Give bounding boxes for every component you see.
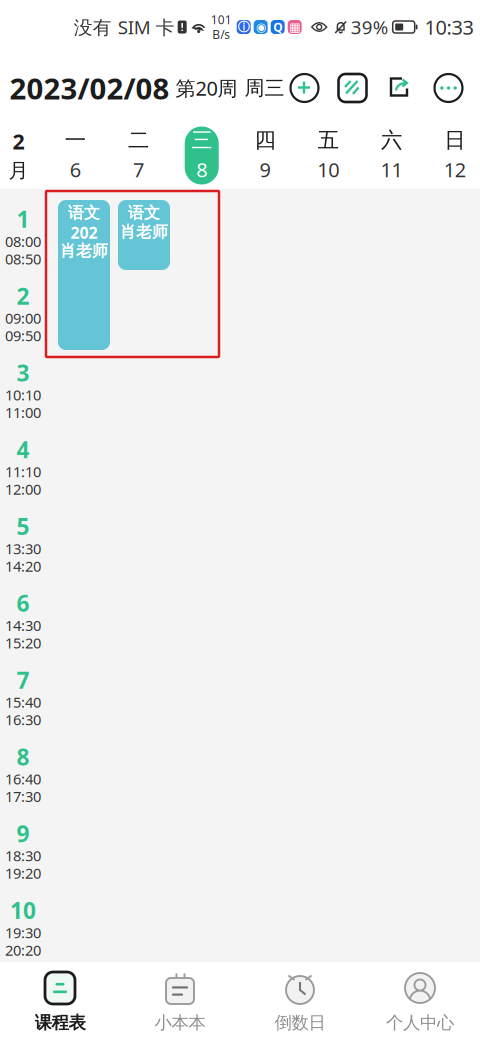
staticText: 六 <box>381 127 402 153</box>
staticText: 19:20 <box>5 863 41 883</box>
staticText: 11:10 <box>5 462 41 481</box>
button[interactable]: 六 <box>375 126 409 184</box>
staticText: 3 <box>16 358 29 388</box>
button[interactable]: 课程表 <box>0 962 120 1040</box>
staticText: 11:00 <box>5 403 41 422</box>
button[interactable]: 分享课表 <box>386 74 414 102</box>
staticText: 没有 SIM 卡 <box>74 15 175 39</box>
staticText: 月 <box>8 158 28 183</box>
staticText: 10:33 <box>424 14 473 40</box>
staticText: 肖老师 <box>60 241 108 261</box>
staticText: 14:30 <box>5 615 41 635</box>
staticText: ▦ <box>289 20 300 34</box>
staticText: 小本本 <box>154 1012 205 1033</box>
staticText: 5 <box>16 511 29 541</box>
button[interactable]: 日 <box>438 126 472 184</box>
staticText: 16:30 <box>5 710 41 729</box>
staticText: 周三 <box>244 76 284 100</box>
staticText: 09:00 <box>5 308 41 328</box>
staticText: 6 <box>16 588 29 618</box>
staticText: 2 <box>16 281 29 311</box>
staticText: 2023/02/08 <box>9 68 169 107</box>
button[interactable]: 三 <box>185 126 219 184</box>
staticText: 20:20 <box>5 940 41 960</box>
staticText: 16:40 <box>5 769 41 789</box>
staticText: 9 <box>259 156 270 183</box>
staticText: Q <box>273 19 282 35</box>
staticText: 2 <box>12 127 24 155</box>
staticText: 10 <box>10 895 36 925</box>
staticText: 15:40 <box>5 692 41 712</box>
staticText: 101 <box>211 12 232 27</box>
staticText: 15:20 <box>5 633 41 652</box>
staticText: 6 <box>70 156 81 183</box>
staticText: 202 <box>70 222 97 243</box>
staticText: 第20周 <box>175 75 237 101</box>
staticText: 11 <box>381 156 403 183</box>
button[interactable]: 个人中心 <box>360 962 480 1040</box>
button[interactable]: 语文 <box>58 200 110 350</box>
staticText: 肖老师 <box>120 222 168 242</box>
button[interactable]: 一 <box>58 126 92 184</box>
button[interactable]: 四 <box>248 126 282 184</box>
staticText: 7 <box>16 665 29 695</box>
button[interactable]: 语文 <box>118 200 170 270</box>
staticText: 12 <box>444 156 466 183</box>
staticText: 语文 <box>68 203 100 223</box>
staticText: 一 <box>65 127 86 153</box>
staticText: 10 <box>317 156 339 183</box>
staticText: 19:30 <box>5 923 41 942</box>
button[interactable]: 小本本 <box>120 962 240 1040</box>
staticText: 三 <box>191 127 212 153</box>
staticText: 8 <box>16 742 29 772</box>
staticText: 课程表 <box>34 1012 85 1033</box>
staticText: 08:00 <box>5 231 41 251</box>
staticText: B/s <box>212 26 230 42</box>
staticText: 08:50 <box>5 249 41 268</box>
staticText: 10:10 <box>5 385 41 405</box>
staticText: 个人中心 <box>386 1012 454 1033</box>
staticText: 4 <box>16 434 29 464</box>
staticText: 日 <box>444 127 465 153</box>
staticText: 8 <box>196 156 207 183</box>
staticText: 39% <box>351 15 389 39</box>
staticText: 9 <box>16 818 29 848</box>
staticText: ⓘ <box>238 20 250 34</box>
staticText: 倒数日 <box>274 1012 325 1033</box>
staticText: 语文 <box>128 203 160 223</box>
staticText: 13:30 <box>5 539 41 558</box>
staticText: 17:30 <box>5 787 41 806</box>
staticText: 09:50 <box>5 326 41 345</box>
staticText: 四 <box>254 127 275 153</box>
staticText: 18:30 <box>5 846 41 865</box>
button[interactable]: 五 <box>311 126 345 184</box>
staticText: 1 <box>16 204 29 234</box>
staticText: 12:00 <box>5 479 41 499</box>
staticText: 二 <box>128 127 149 153</box>
button[interactable]: 添加课程 <box>290 74 318 102</box>
staticText: 7 <box>133 156 144 183</box>
staticText: 五 <box>318 127 339 153</box>
button[interactable]: 切换主题 <box>338 74 366 102</box>
button[interactable]: 更多 <box>434 74 462 102</box>
button[interactable]: 二 <box>121 126 155 184</box>
staticText: 14:20 <box>5 556 41 576</box>
staticText: ◉ <box>256 20 266 34</box>
button[interactable]: 倒数日 <box>240 962 360 1040</box>
